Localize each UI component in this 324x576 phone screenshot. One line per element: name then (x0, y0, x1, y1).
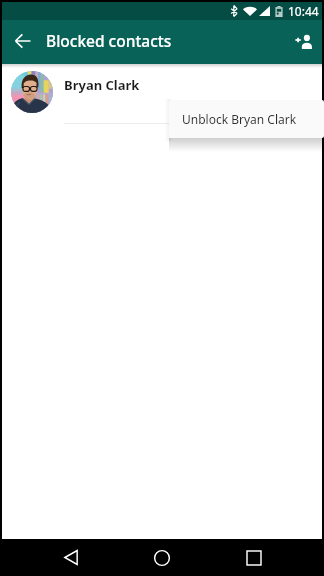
button[interactable]: Unblock Bryan Clark (169, 100, 324, 138)
staticText: 10:44 (288, 3, 319, 19)
button[interactable]: Bryan Clark (2, 64, 322, 123)
button[interactable]: Recent apps (214, 539, 322, 576)
staticText: Bryan Clark (64, 76, 140, 94)
staticText: Unblock Bryan Clark (182, 111, 297, 127)
button[interactable]: Back (2, 20, 46, 64)
button[interactable]: Home (108, 539, 214, 576)
button[interactable]: Add blocked contact (278, 20, 322, 64)
button[interactable]: Back (2, 539, 108, 576)
staticText: Blocked contacts (46, 30, 172, 51)
